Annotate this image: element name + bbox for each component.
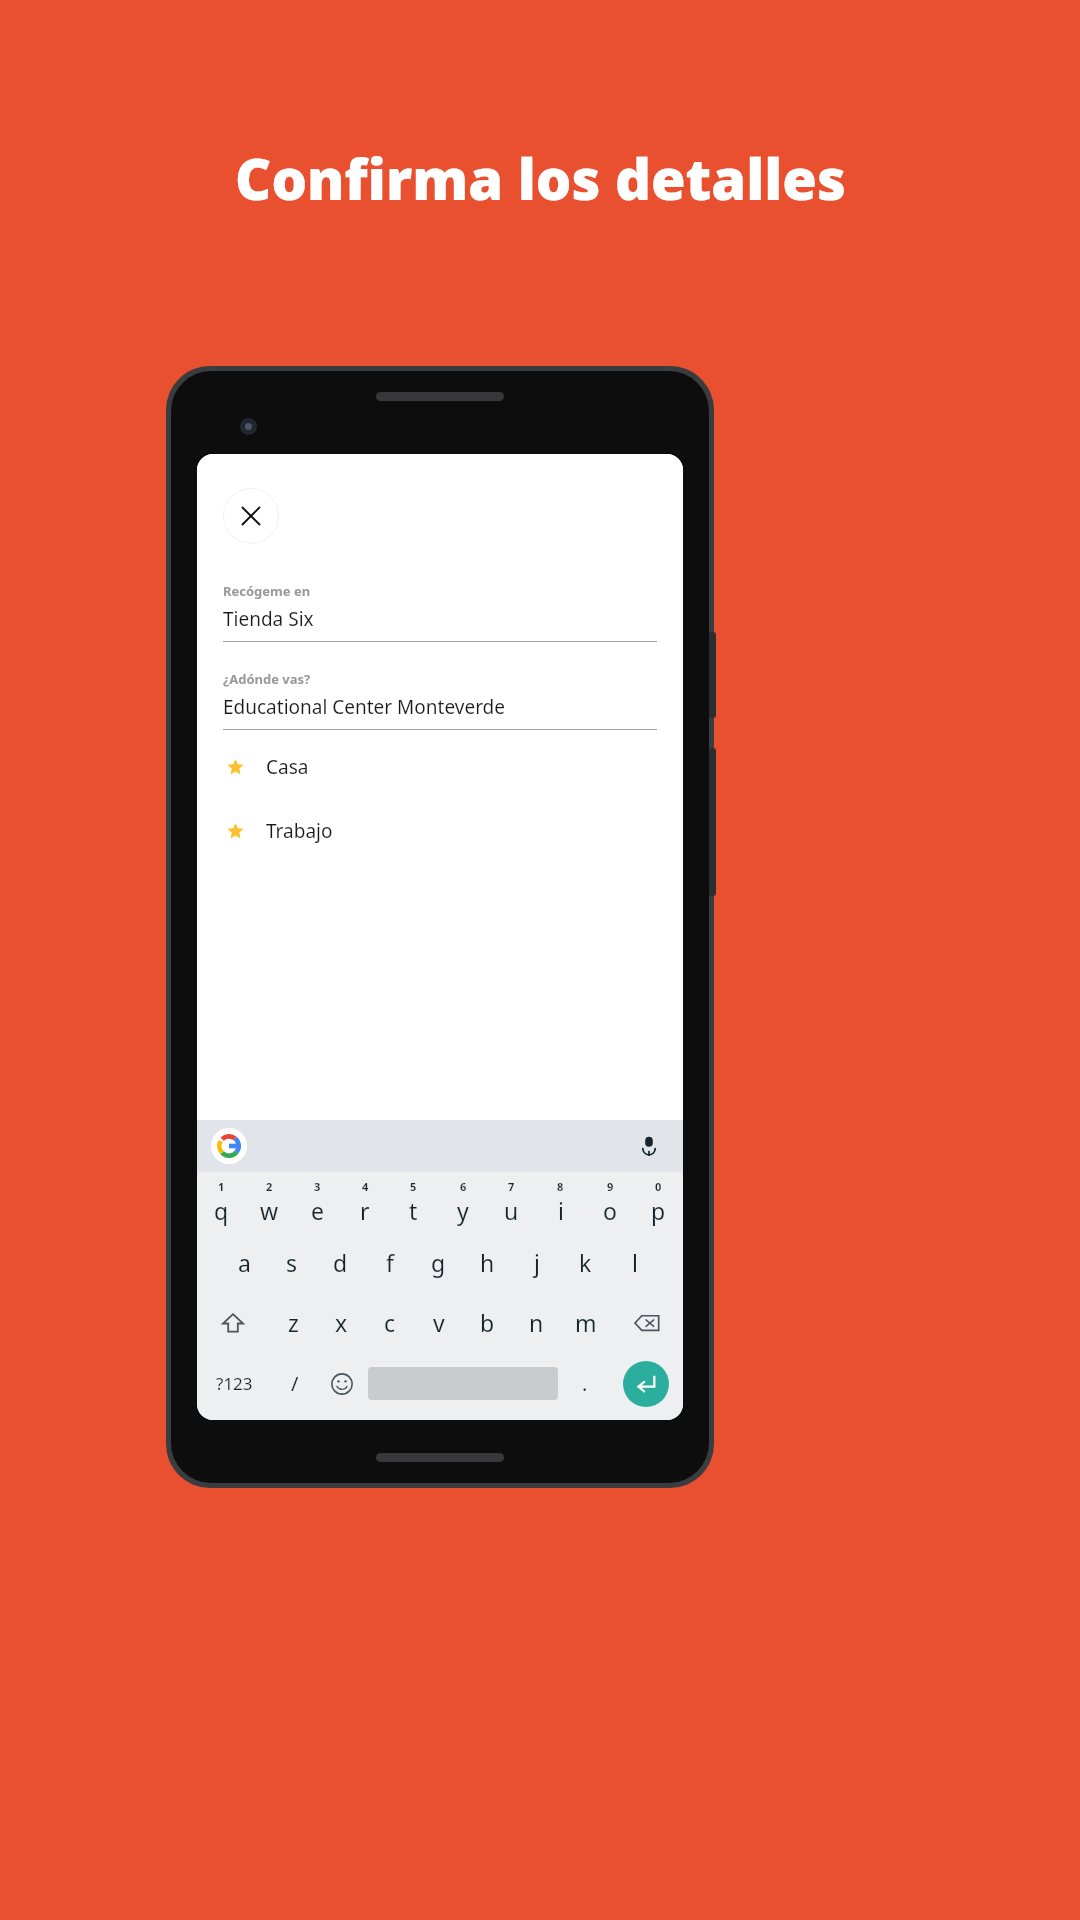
button[interactable]: 3: [293, 1172, 341, 1232]
staticText: i: [558, 1195, 564, 1226]
staticText: 1: [218, 1179, 225, 1194]
staticText: y: [457, 1195, 469, 1226]
staticText: g: [431, 1247, 446, 1278]
staticText: v: [433, 1307, 445, 1338]
button[interactable]: j: [512, 1232, 561, 1292]
button[interactable]: ¿Adónde vas?: [223, 670, 657, 730]
button[interactable]: Cerrar: [223, 488, 279, 544]
button[interactable]: h: [463, 1232, 512, 1292]
staticText: j: [534, 1247, 540, 1278]
button[interactable]: m: [561, 1292, 610, 1353]
staticText: f: [386, 1247, 394, 1278]
button[interactable]: a: [220, 1232, 268, 1292]
button[interactable]: k: [561, 1232, 610, 1292]
button[interactable]: 5: [389, 1172, 438, 1232]
staticText: c: [384, 1307, 396, 1338]
staticText: m: [575, 1307, 597, 1338]
staticText: e: [311, 1195, 324, 1226]
staticText: Confirma los detalles: [235, 140, 846, 216]
staticText: u: [504, 1195, 519, 1226]
staticText: Casa: [266, 754, 309, 780]
staticText: q: [214, 1195, 229, 1226]
staticText: Tienda Six: [223, 606, 314, 632]
staticText: s: [286, 1247, 298, 1278]
staticText: a: [238, 1247, 251, 1278]
button[interactable]: g: [414, 1232, 463, 1292]
button[interactable]: Búsqueda de Google: [211, 1128, 247, 1164]
staticText: r: [360, 1195, 370, 1226]
staticText: 8: [557, 1179, 564, 1194]
staticText: 3: [314, 1179, 321, 1194]
button[interactable]: Casa: [223, 754, 657, 780]
button[interactable]: s: [268, 1232, 316, 1292]
staticText: .: [582, 1370, 588, 1397]
button[interactable]: Mayúsculas: [197, 1292, 269, 1353]
button[interactable]: 1: [197, 1172, 245, 1232]
button[interactable]: 6: [438, 1172, 487, 1232]
button[interactable]: 4: [341, 1172, 389, 1232]
button[interactable]: 7: [487, 1172, 536, 1232]
button[interactable]: d: [316, 1232, 365, 1292]
button[interactable]: b: [463, 1292, 512, 1353]
button[interactable]: n: [512, 1292, 561, 1353]
staticText: ¿Adónde vas?: [223, 670, 311, 688]
staticText: 2: [266, 1179, 273, 1194]
staticText: 7: [508, 1179, 515, 1194]
staticText: h: [480, 1247, 495, 1278]
staticText: /: [291, 1370, 299, 1397]
staticText: 4: [362, 1179, 369, 1194]
staticText: k: [579, 1247, 592, 1278]
button[interactable]: l: [610, 1232, 659, 1292]
staticText: 9: [607, 1179, 614, 1194]
staticText: Educational Center Monteverde: [223, 694, 505, 720]
button[interactable]: 8: [536, 1172, 585, 1232]
staticText: t: [409, 1195, 418, 1226]
button[interactable]: ?123: [197, 1353, 271, 1414]
button[interactable]: Intro: [623, 1361, 669, 1407]
button[interactable]: Retroceso: [610, 1292, 683, 1353]
staticText: 0: [655, 1179, 662, 1194]
button[interactable]: 9: [585, 1172, 634, 1232]
staticText: b: [480, 1307, 495, 1338]
button[interactable]: /: [271, 1353, 318, 1414]
button[interactable]: 2: [245, 1172, 293, 1232]
button[interactable]: c: [365, 1292, 414, 1353]
staticText: n: [529, 1307, 544, 1338]
button[interactable]: z: [269, 1292, 317, 1353]
staticText: o: [603, 1195, 617, 1226]
button[interactable]: .: [561, 1353, 608, 1414]
staticText: Trabajo: [266, 818, 333, 844]
staticText: x: [335, 1307, 348, 1338]
button[interactable]: x: [317, 1292, 365, 1353]
staticText: d: [333, 1247, 348, 1278]
button[interactable]: 0: [634, 1172, 683, 1232]
button[interactable]: Recógeme en: [223, 582, 657, 642]
button[interactable]: v: [414, 1292, 463, 1353]
staticText: 5: [410, 1179, 417, 1194]
staticText: z: [288, 1307, 299, 1338]
staticText: ?123: [216, 1372, 253, 1395]
staticText: Recógeme en: [223, 582, 311, 600]
button[interactable]: Emoji: [318, 1353, 365, 1414]
button[interactable]: Entrada de voz: [633, 1130, 665, 1162]
staticText: 6: [460, 1179, 467, 1194]
staticText: l: [632, 1247, 638, 1278]
button[interactable]: Trabajo: [223, 818, 657, 844]
staticText: w: [260, 1195, 279, 1226]
button[interactable]: f: [365, 1232, 414, 1292]
staticText: p: [651, 1195, 666, 1226]
